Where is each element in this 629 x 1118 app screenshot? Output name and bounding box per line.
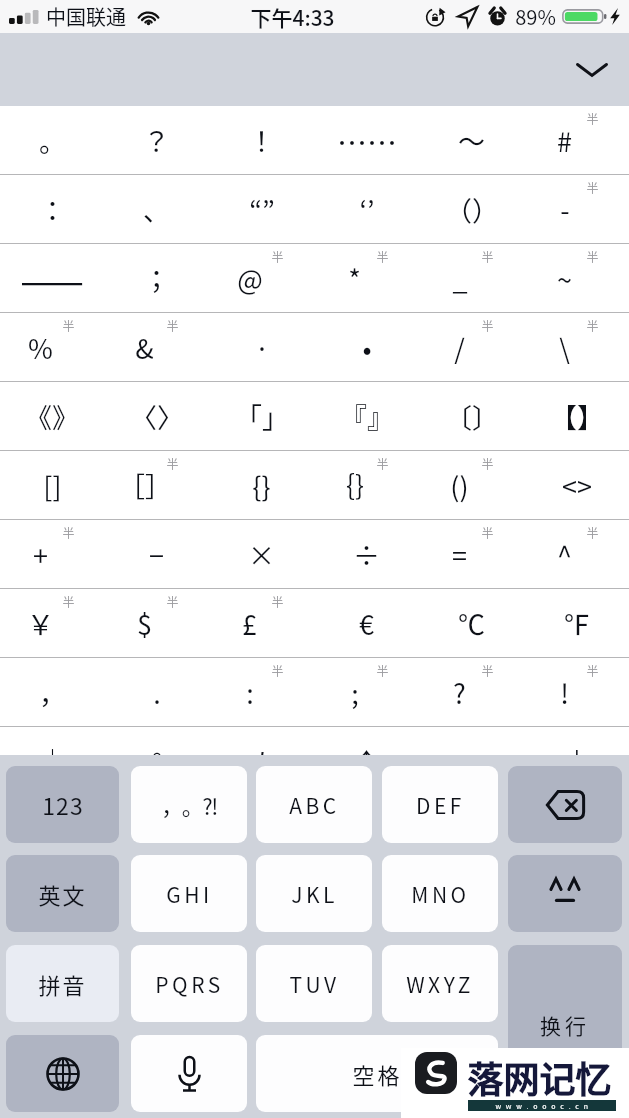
button[interactable]: ！ — [209, 106, 314, 174]
button[interactable]: 『』 — [314, 382, 419, 450]
button[interactable]: € — [314, 589, 419, 657]
button[interactable]: ° — [104, 727, 209, 795]
button[interactable]: @ — [209, 244, 314, 312]
button[interactable]: Return — [508, 945, 622, 1112]
button[interactable]: ，。?! — [131, 766, 247, 843]
button[interactable]: 、 — [419, 727, 524, 795]
button[interactable]: : — [209, 658, 314, 726]
staticText: € — [359, 604, 374, 643]
staticText: 半 — [376, 248, 389, 265]
button[interactable]: 「」 — [209, 382, 314, 450]
button[interactable]: 【】 — [524, 382, 629, 450]
staticText: 、 — [458, 742, 485, 781]
button[interactable]: [] — [0, 451, 104, 519]
button[interactable]: • — [314, 313, 419, 381]
button[interactable]: 英文 — [6, 855, 119, 932]
staticText: | — [573, 742, 581, 781]
button[interactable]: （） — [419, 175, 524, 243]
button[interactable]: ～ — [419, 106, 524, 174]
button[interactable]: MNO — [382, 855, 498, 932]
button[interactable]: ′ — [209, 727, 314, 795]
button[interactable]: ! — [524, 658, 629, 726]
staticText: · — [254, 328, 270, 367]
button[interactable]: —— — [0, 244, 104, 312]
staticText: ÷ — [353, 535, 380, 574]
button[interactable]: £ — [209, 589, 314, 657]
button[interactable]: 、 — [104, 175, 209, 243]
button[interactable]: + — [0, 520, 104, 588]
staticText: ′ — [258, 742, 266, 781]
button[interactable]: ￥ — [0, 589, 104, 657]
button[interactable]: 《》 — [0, 382, 104, 450]
staticText: - — [560, 190, 570, 229]
button[interactable]: 。 — [0, 106, 104, 174]
button[interactable]: ； — [104, 244, 209, 312]
button[interactable]: Hide keyboard — [566, 44, 618, 96]
button[interactable]: () — [419, 451, 524, 519]
staticText: （） — [445, 190, 499, 229]
button[interactable]: ; — [314, 658, 419, 726]
button[interactable]: {} — [209, 451, 314, 519]
staticText: 〈〉 — [130, 397, 184, 436]
staticText: 123 — [42, 788, 84, 821]
button[interactable]: <> — [524, 451, 629, 519]
staticText: …… — [337, 119, 397, 162]
button[interactable]: DEF — [382, 766, 498, 843]
button[interactable]: Voice input — [131, 1035, 247, 1112]
staticText: / — [454, 328, 465, 367]
button[interactable]: $ — [104, 589, 209, 657]
button[interactable]: Switch input language — [6, 1035, 119, 1112]
button[interactable]: …… — [314, 106, 419, 174]
button[interactable]: TUV — [256, 945, 372, 1022]
button[interactable]: ↑ — [314, 727, 419, 795]
button[interactable]: % — [0, 313, 104, 381]
button[interactable]: ｜ — [0, 727, 104, 795]
button[interactable]: − — [104, 520, 209, 588]
button[interactable]: ｛｝ — [314, 451, 419, 519]
button[interactable]: ℉ — [524, 589, 629, 657]
button[interactable]: PQRS — [131, 945, 247, 1022]
button[interactable]: Delete — [508, 766, 622, 843]
staticText: 落网记忆 — [467, 1051, 612, 1103]
button[interactable]: / — [419, 313, 524, 381]
staticText: £ — [242, 604, 257, 643]
button[interactable]: 空格 — [256, 1035, 498, 1112]
button[interactable]: ? — [419, 658, 524, 726]
button[interactable]: ［］ — [104, 451, 209, 519]
button[interactable]: WXYZ — [382, 945, 498, 1022]
button[interactable]: ^ — [524, 520, 629, 588]
button[interactable]: ÷ — [314, 520, 419, 588]
button[interactable]: _ — [419, 244, 524, 312]
staticText: × — [248, 535, 275, 574]
button[interactable]: 拼音 — [6, 945, 119, 1022]
button[interactable]: ABC — [256, 766, 372, 843]
staticText: 换行 — [540, 1010, 590, 1040]
button[interactable]: * — [314, 244, 419, 312]
button[interactable]: ‘’ — [314, 175, 419, 243]
button[interactable]: GHI — [131, 855, 247, 932]
button[interactable]: # — [524, 106, 629, 174]
staticText: GHI — [166, 879, 213, 909]
button[interactable]: “” — [209, 175, 314, 243]
button[interactable]: . — [104, 658, 209, 726]
button[interactable]: ， — [0, 658, 104, 726]
button[interactable]: = — [419, 520, 524, 588]
staticText: 半 — [481, 317, 494, 334]
button[interactable]: 〔〕 — [419, 382, 524, 450]
button[interactable]: JKL — [256, 855, 372, 932]
button[interactable]: × — [209, 520, 314, 588]
button[interactable]: ~ — [524, 244, 629, 312]
staticText: ［］ — [118, 466, 172, 505]
button[interactable]: | — [524, 727, 629, 795]
button[interactable]: ？ — [104, 106, 209, 174]
button[interactable]: ℃ — [419, 589, 524, 657]
button[interactable]: - — [524, 175, 629, 243]
button[interactable]: & — [104, 313, 209, 381]
button[interactable]: 123 — [6, 766, 119, 843]
button[interactable]: \ — [524, 313, 629, 381]
staticText: 『』 — [340, 397, 394, 436]
button[interactable]: 〈〉 — [104, 382, 209, 450]
button[interactable]: Emoticons — [508, 855, 622, 932]
button[interactable]: ： — [0, 175, 104, 243]
button[interactable]: · — [209, 313, 314, 381]
